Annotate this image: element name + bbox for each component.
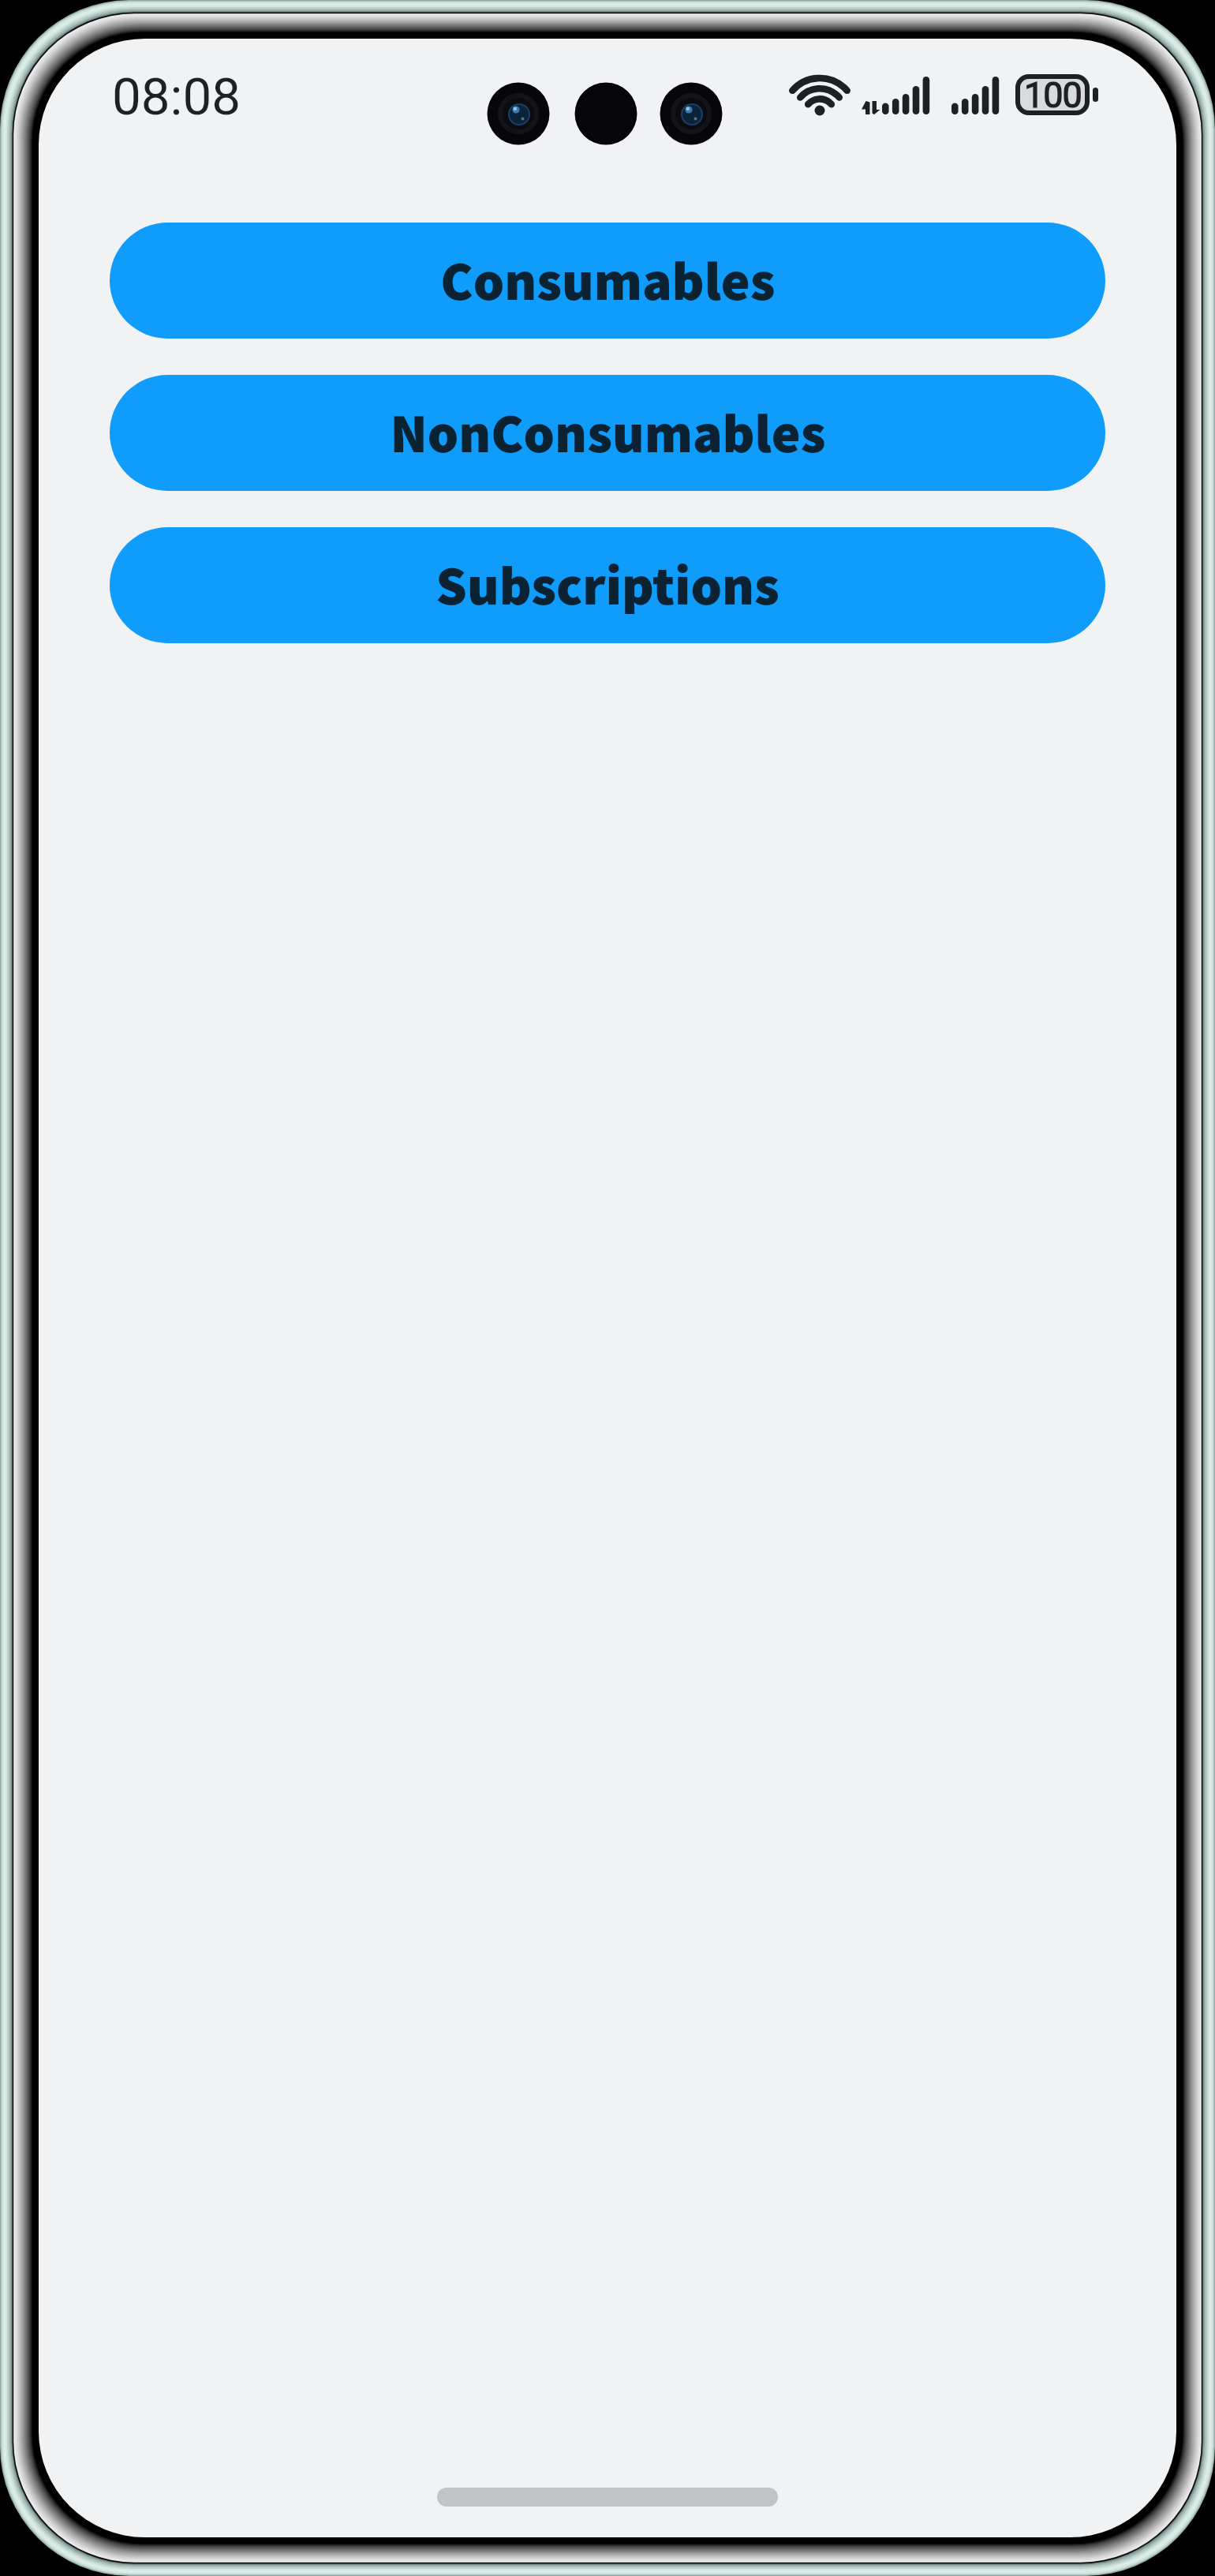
button[interactable]: NonConsumables (110, 375, 1105, 491)
button[interactable]: Subscriptions (110, 527, 1105, 643)
button[interactable]: Consumables (110, 223, 1105, 339)
staticText: NonConsumables (390, 395, 826, 468)
staticText: Consumables (440, 243, 776, 316)
staticText: 100 (1024, 74, 1082, 115)
staticText: 08:08 (112, 66, 241, 127)
staticText: Subscriptions (436, 548, 779, 620)
